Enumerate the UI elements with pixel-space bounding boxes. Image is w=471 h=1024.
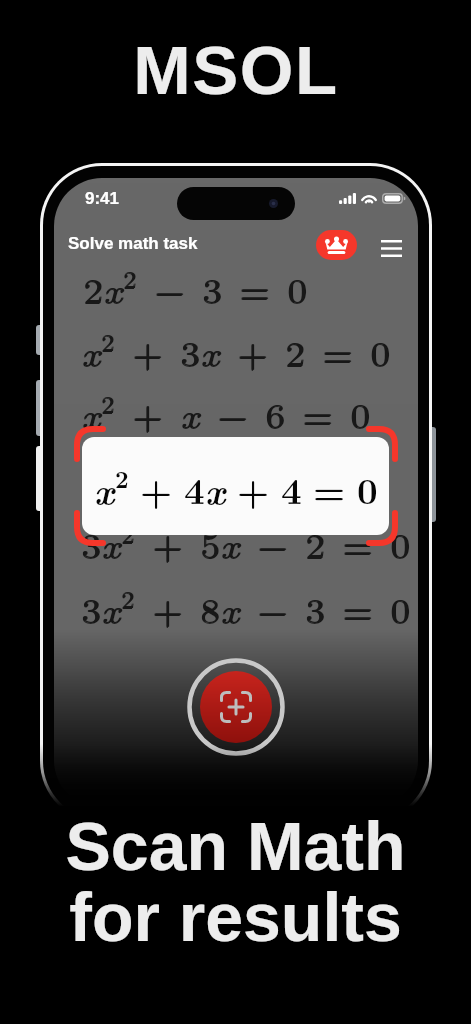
staticText: x xyxy=(81,328,101,378)
staticText: = xyxy=(302,390,333,440)
staticText: x xyxy=(102,584,122,634)
staticText: 3 xyxy=(202,264,222,314)
staticText: x xyxy=(180,390,200,440)
staticText: x xyxy=(201,327,221,377)
staticText: x xyxy=(220,584,240,634)
staticText: 0 xyxy=(288,264,308,314)
staticText: 0 xyxy=(287,265,307,315)
staticText: 3 xyxy=(180,327,200,377)
staticText: 0 xyxy=(390,520,410,570)
staticText: x xyxy=(103,264,123,314)
staticText: x xyxy=(81,389,101,439)
staticText: 0 xyxy=(350,389,370,439)
staticText: x xyxy=(200,328,220,378)
staticText: 0 xyxy=(350,390,370,440)
staticText: = xyxy=(343,584,374,634)
button[interactable]: Premium subscription xyxy=(316,230,357,260)
staticText: − xyxy=(257,520,288,570)
staticText: + xyxy=(132,389,163,439)
staticText: x xyxy=(220,520,240,570)
staticText: 2 xyxy=(285,328,305,378)
staticText: + xyxy=(132,327,163,377)
staticText: 2 xyxy=(83,265,103,315)
staticText: 2 xyxy=(286,327,306,377)
staticText: 2 xyxy=(305,520,325,570)
staticText: = xyxy=(313,463,346,514)
staticText: − xyxy=(218,389,249,439)
staticText: + xyxy=(238,327,269,377)
staticText: 0 xyxy=(357,463,378,514)
staticText: − xyxy=(257,519,288,569)
button[interactable]: Scan xyxy=(187,658,285,756)
staticText: 3 xyxy=(305,585,325,635)
staticText: 0 xyxy=(370,328,390,378)
staticText: = xyxy=(342,585,373,635)
staticText: 6 xyxy=(265,389,285,439)
staticText: 0 xyxy=(391,584,411,634)
staticText: 2 xyxy=(121,517,135,550)
staticText: = xyxy=(342,520,373,570)
staticText: 6 xyxy=(266,389,286,439)
staticText: = xyxy=(342,519,373,569)
staticText: + xyxy=(140,463,173,514)
staticText: 2 xyxy=(121,582,135,615)
staticText: x xyxy=(101,520,121,570)
staticText: − xyxy=(258,519,289,569)
staticText: x xyxy=(94,463,115,515)
staticText: − xyxy=(154,265,185,315)
staticText: 0 xyxy=(390,584,410,634)
staticText: 3 xyxy=(81,584,101,634)
staticText: − xyxy=(258,584,289,634)
staticText: 2 xyxy=(101,388,115,421)
staticText: − xyxy=(257,584,288,634)
staticText: 0 xyxy=(351,389,371,439)
staticText: 5 xyxy=(200,520,220,570)
staticText: = xyxy=(342,584,373,634)
staticText: x xyxy=(200,327,220,377)
staticText: 2 xyxy=(84,264,104,314)
staticText: 3 xyxy=(82,519,102,569)
staticText: − xyxy=(257,585,288,635)
staticText: 3 xyxy=(305,584,325,634)
staticText: x xyxy=(82,389,102,439)
staticText: 8 xyxy=(201,584,221,634)
staticText: + xyxy=(237,463,270,514)
staticText: 9:41 xyxy=(85,189,120,208)
staticText: = xyxy=(343,519,374,569)
staticText: + xyxy=(152,519,183,569)
staticText: 2 xyxy=(306,519,326,569)
staticText: + xyxy=(133,327,164,377)
staticText: 2 xyxy=(285,327,305,377)
staticText: Scan Math xyxy=(65,808,406,884)
staticText: = xyxy=(239,264,270,314)
staticText: 0 xyxy=(371,327,391,377)
staticText: 0 xyxy=(390,585,410,635)
staticText: x xyxy=(221,519,241,569)
staticText: + xyxy=(237,328,268,378)
staticText: + xyxy=(152,520,183,570)
staticText: 3 xyxy=(180,328,200,378)
staticText: = xyxy=(240,264,271,314)
staticText: 2 xyxy=(121,518,135,551)
staticText: 8 xyxy=(200,584,220,634)
staticText: + xyxy=(152,584,183,634)
staticText: + xyxy=(153,519,184,569)
button[interactable]: x xyxy=(82,437,389,535)
staticText: Solve math task xyxy=(68,234,198,253)
staticText: 3 xyxy=(81,585,101,635)
staticText: = xyxy=(323,327,354,377)
staticText: 2 xyxy=(122,582,136,615)
staticText: 2 xyxy=(101,326,115,359)
staticText: 2 xyxy=(124,262,138,295)
button[interactable]: Menu xyxy=(375,232,407,264)
staticText: 8 xyxy=(200,585,220,635)
staticText: x xyxy=(104,264,124,314)
staticText: 3 xyxy=(181,327,201,377)
staticText: 3 xyxy=(306,584,326,634)
staticText: 2 xyxy=(101,387,115,420)
staticText: x xyxy=(102,519,122,569)
staticText: 2 xyxy=(123,262,137,295)
staticText: = xyxy=(302,389,333,439)
staticText: x xyxy=(82,327,102,377)
staticText: x xyxy=(220,519,240,569)
